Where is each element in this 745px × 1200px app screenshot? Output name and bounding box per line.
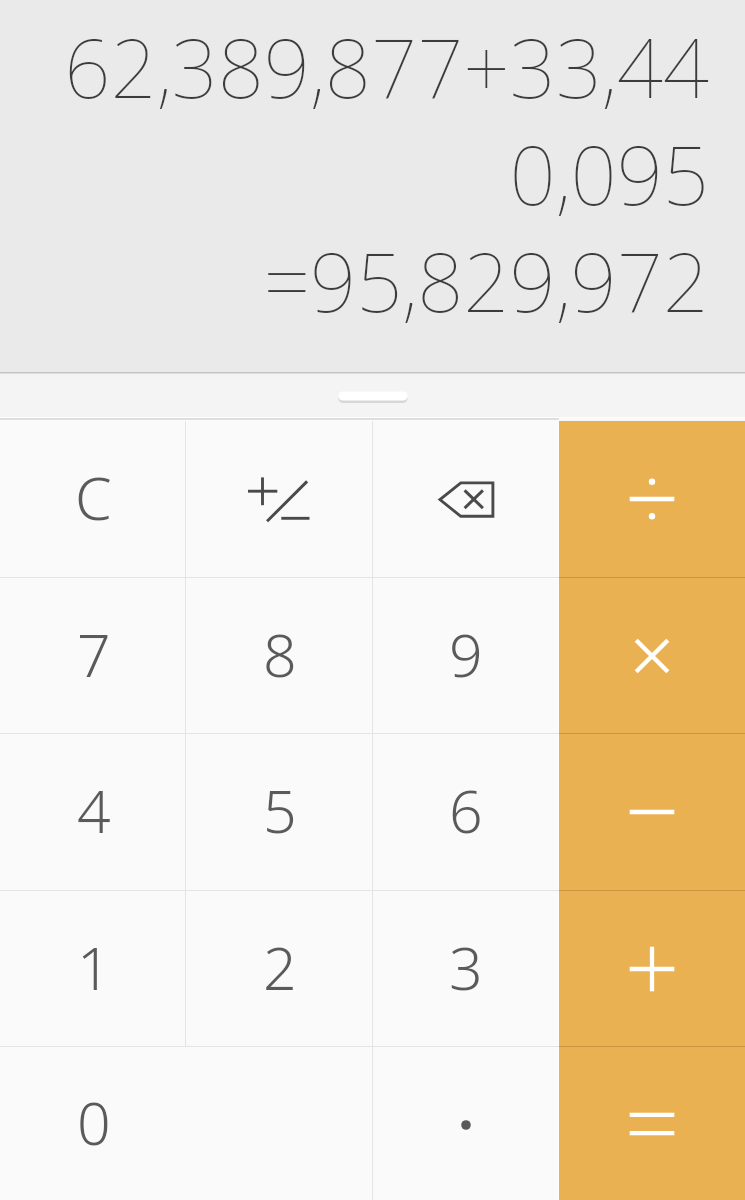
button[interactable]: Multiply — [559, 578, 745, 733]
button[interactable]: 9 — [373, 578, 559, 733]
staticText: 4 — [77, 770, 111, 850]
button[interactable]: 6 — [373, 734, 559, 890]
staticText: C — [75, 457, 112, 537]
staticText: 7 — [77, 614, 111, 694]
button[interactable]: Equals — [559, 1047, 745, 1200]
staticText: 0 — [77, 1082, 111, 1162]
staticText: 9 — [449, 614, 483, 694]
button[interactable]: 3 — [373, 891, 559, 1046]
staticText: 2 — [263, 927, 297, 1007]
button[interactable]: Backspace — [373, 421, 559, 577]
staticText: 8 — [263, 614, 297, 694]
button[interactable]: Decimal point — [373, 1047, 559, 1200]
button[interactable]: 8 — [187, 578, 373, 733]
button[interactable]: 4 — [0, 734, 187, 890]
staticText: 6 — [449, 770, 483, 850]
button[interactable]: 7 — [0, 578, 187, 733]
button[interactable]: Add — [559, 891, 745, 1046]
button[interactable]: Toggle sign — [187, 421, 373, 577]
button[interactable]: 2 — [187, 891, 373, 1046]
button[interactable]: Divide — [559, 421, 745, 577]
button[interactable]: 5 — [187, 734, 373, 890]
button[interactable]: C — [0, 421, 187, 577]
button[interactable]: 0 — [0, 1047, 373, 1200]
staticText: 1 — [77, 927, 111, 1007]
button[interactable]: 1 — [0, 891, 187, 1046]
staticText: 3 — [449, 927, 483, 1007]
staticText: 5 — [263, 770, 297, 850]
staticText: 62,389,877+33,440,095 =95,829,972 — [50, 11, 709, 336]
button[interactable]: Subtract — [559, 734, 745, 890]
